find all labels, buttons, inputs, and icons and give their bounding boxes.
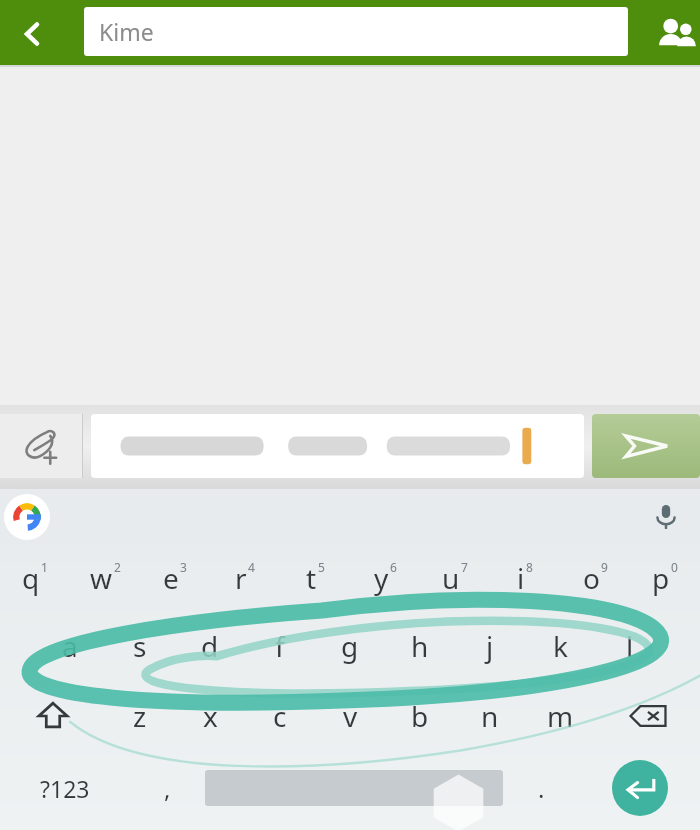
staticText: l [626, 627, 634, 665]
staticText: g [341, 627, 359, 665]
button[interactable]: z [105, 681, 175, 751]
button[interactable]: v [315, 681, 385, 751]
staticText: e [163, 559, 179, 597]
button[interactable]: y [350, 545, 420, 611]
staticText: Kime [99, 16, 154, 47]
button[interactable]: n [455, 681, 525, 751]
button[interactable]: c [245, 681, 315, 751]
staticText: 4 [248, 559, 255, 575]
button[interactable]: r [210, 545, 280, 611]
staticText: t [306, 559, 317, 597]
staticText: m [547, 697, 574, 735]
staticText: 7 [461, 559, 468, 575]
button[interactable]: q [0, 545, 70, 611]
staticText: f [275, 627, 285, 665]
button[interactable]: k [525, 611, 595, 681]
staticText: n [481, 697, 499, 735]
staticText: r [235, 559, 247, 597]
staticText: 6 [390, 559, 397, 575]
staticText: j [486, 627, 494, 665]
button[interactable]: s [105, 611, 175, 681]
button[interactable]: , [129, 751, 205, 825]
staticText: d [201, 627, 219, 665]
staticText: 5 [318, 559, 325, 575]
button[interactable]: Back [0, 0, 64, 67]
staticText: h [411, 627, 429, 665]
staticText: 2 [114, 559, 121, 575]
staticText: a [62, 627, 78, 665]
staticText: z [133, 697, 147, 735]
button[interactable]: Google [4, 494, 50, 540]
staticText: p [652, 559, 670, 597]
staticText: q [22, 559, 40, 597]
button[interactable]: Send [592, 414, 700, 478]
button[interactable]: . [503, 751, 579, 825]
button[interactable]: d [175, 611, 245, 681]
button[interactable]: Enter [612, 760, 668, 816]
button[interactable] [91, 414, 584, 478]
staticText: 0 [671, 559, 678, 575]
staticText: o [583, 559, 600, 597]
button[interactable]: Voice input [644, 495, 688, 539]
button[interactable]: x [175, 681, 245, 751]
staticText: 8 [526, 559, 533, 575]
button[interactable]: Attach [0, 414, 82, 478]
button[interactable]: h [385, 611, 455, 681]
staticText: y [374, 559, 389, 597]
button[interactable]: t [280, 545, 350, 611]
button[interactable]: Space [205, 770, 503, 806]
button[interactable]: e [140, 545, 210, 611]
staticText: v [343, 697, 358, 735]
button[interactable]: m [525, 681, 595, 751]
staticText: i [517, 559, 525, 597]
staticText: b [411, 697, 429, 735]
staticText: 3 [180, 559, 187, 575]
button[interactable]: i [490, 545, 560, 611]
staticText: , [164, 772, 171, 805]
button[interactable]: p [630, 545, 700, 611]
staticText: k [553, 627, 568, 665]
staticText: w [90, 559, 113, 597]
staticText: x [203, 697, 218, 735]
button[interactable]: Choose contact [630, 0, 700, 67]
button[interactable]: l [595, 611, 665, 681]
button[interactable]: Kime [84, 7, 628, 56]
staticText: s [133, 627, 147, 665]
button[interactable]: g [315, 611, 385, 681]
staticText: ?123 [40, 773, 90, 804]
button[interactable]: j [455, 611, 525, 681]
button[interactable]: b [385, 681, 455, 751]
staticText: 9 [601, 559, 608, 575]
button[interactable]: w [70, 545, 140, 611]
button[interactable]: ?123 [0, 751, 129, 825]
button[interactable]: Backspace [595, 681, 700, 751]
button[interactable]: f [245, 611, 315, 681]
staticText: u [442, 559, 460, 597]
staticText: c [273, 697, 287, 735]
staticText: . [538, 772, 545, 805]
button[interactable]: o [560, 545, 630, 611]
button[interactable]: u [420, 545, 490, 611]
button[interactable]: Shift [0, 681, 105, 751]
button[interactable]: a [35, 611, 105, 681]
staticText: 1 [41, 559, 48, 575]
